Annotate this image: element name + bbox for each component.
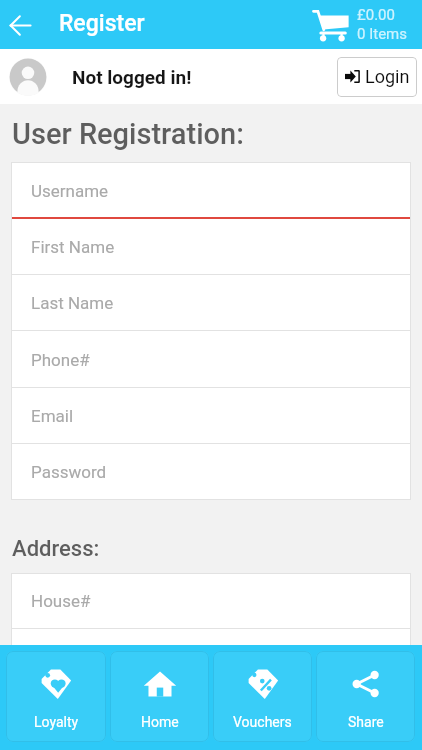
staticText: Username: [31, 181, 109, 201]
button[interactable]: Street: [11, 629, 411, 685]
button[interactable]: Back: [0, 5, 40, 45]
button[interactable]: Login: [337, 57, 417, 97]
staticText: User Registration:: [12, 117, 244, 151]
staticText: First Name: [31, 237, 115, 257]
button[interactable]: Share: [316, 651, 415, 742]
staticText: Password: [31, 462, 107, 482]
staticText: 0 Items: [357, 25, 407, 43]
button[interactable]: Username: [11, 162, 411, 219]
staticText: Phone#: [31, 350, 90, 370]
button[interactable]: First Name: [11, 219, 411, 275]
button[interactable]: Password: [11, 444, 411, 500]
staticText: Email: [31, 406, 74, 426]
staticText: Share: [348, 714, 384, 730]
staticText: Register: [59, 10, 145, 37]
button[interactable]: Home: [110, 651, 209, 742]
button[interactable]: Email: [11, 388, 411, 444]
staticText: £0.00: [357, 6, 395, 24]
staticText: Loyalty: [34, 714, 79, 730]
button[interactable]: Cart: [312, 6, 407, 43]
other: Cart: [312, 8, 349, 41]
button[interactable]: Last Name: [11, 275, 411, 331]
button[interactable]: Loyalty: [6, 651, 106, 742]
button[interactable]: Phone#: [11, 331, 411, 388]
button[interactable]: House#: [11, 573, 411, 629]
staticText: Address:: [12, 536, 100, 562]
staticText: Vouchers: [233, 714, 292, 730]
staticText: Not logged in!: [72, 66, 192, 88]
button[interactable]: Vouchers: [213, 651, 312, 742]
staticText: Home: [141, 714, 179, 730]
staticText: Street: [31, 647, 76, 667]
staticText: Last Name: [31, 293, 114, 313]
staticText: House#: [31, 591, 91, 611]
staticText: Login: [365, 66, 410, 87]
